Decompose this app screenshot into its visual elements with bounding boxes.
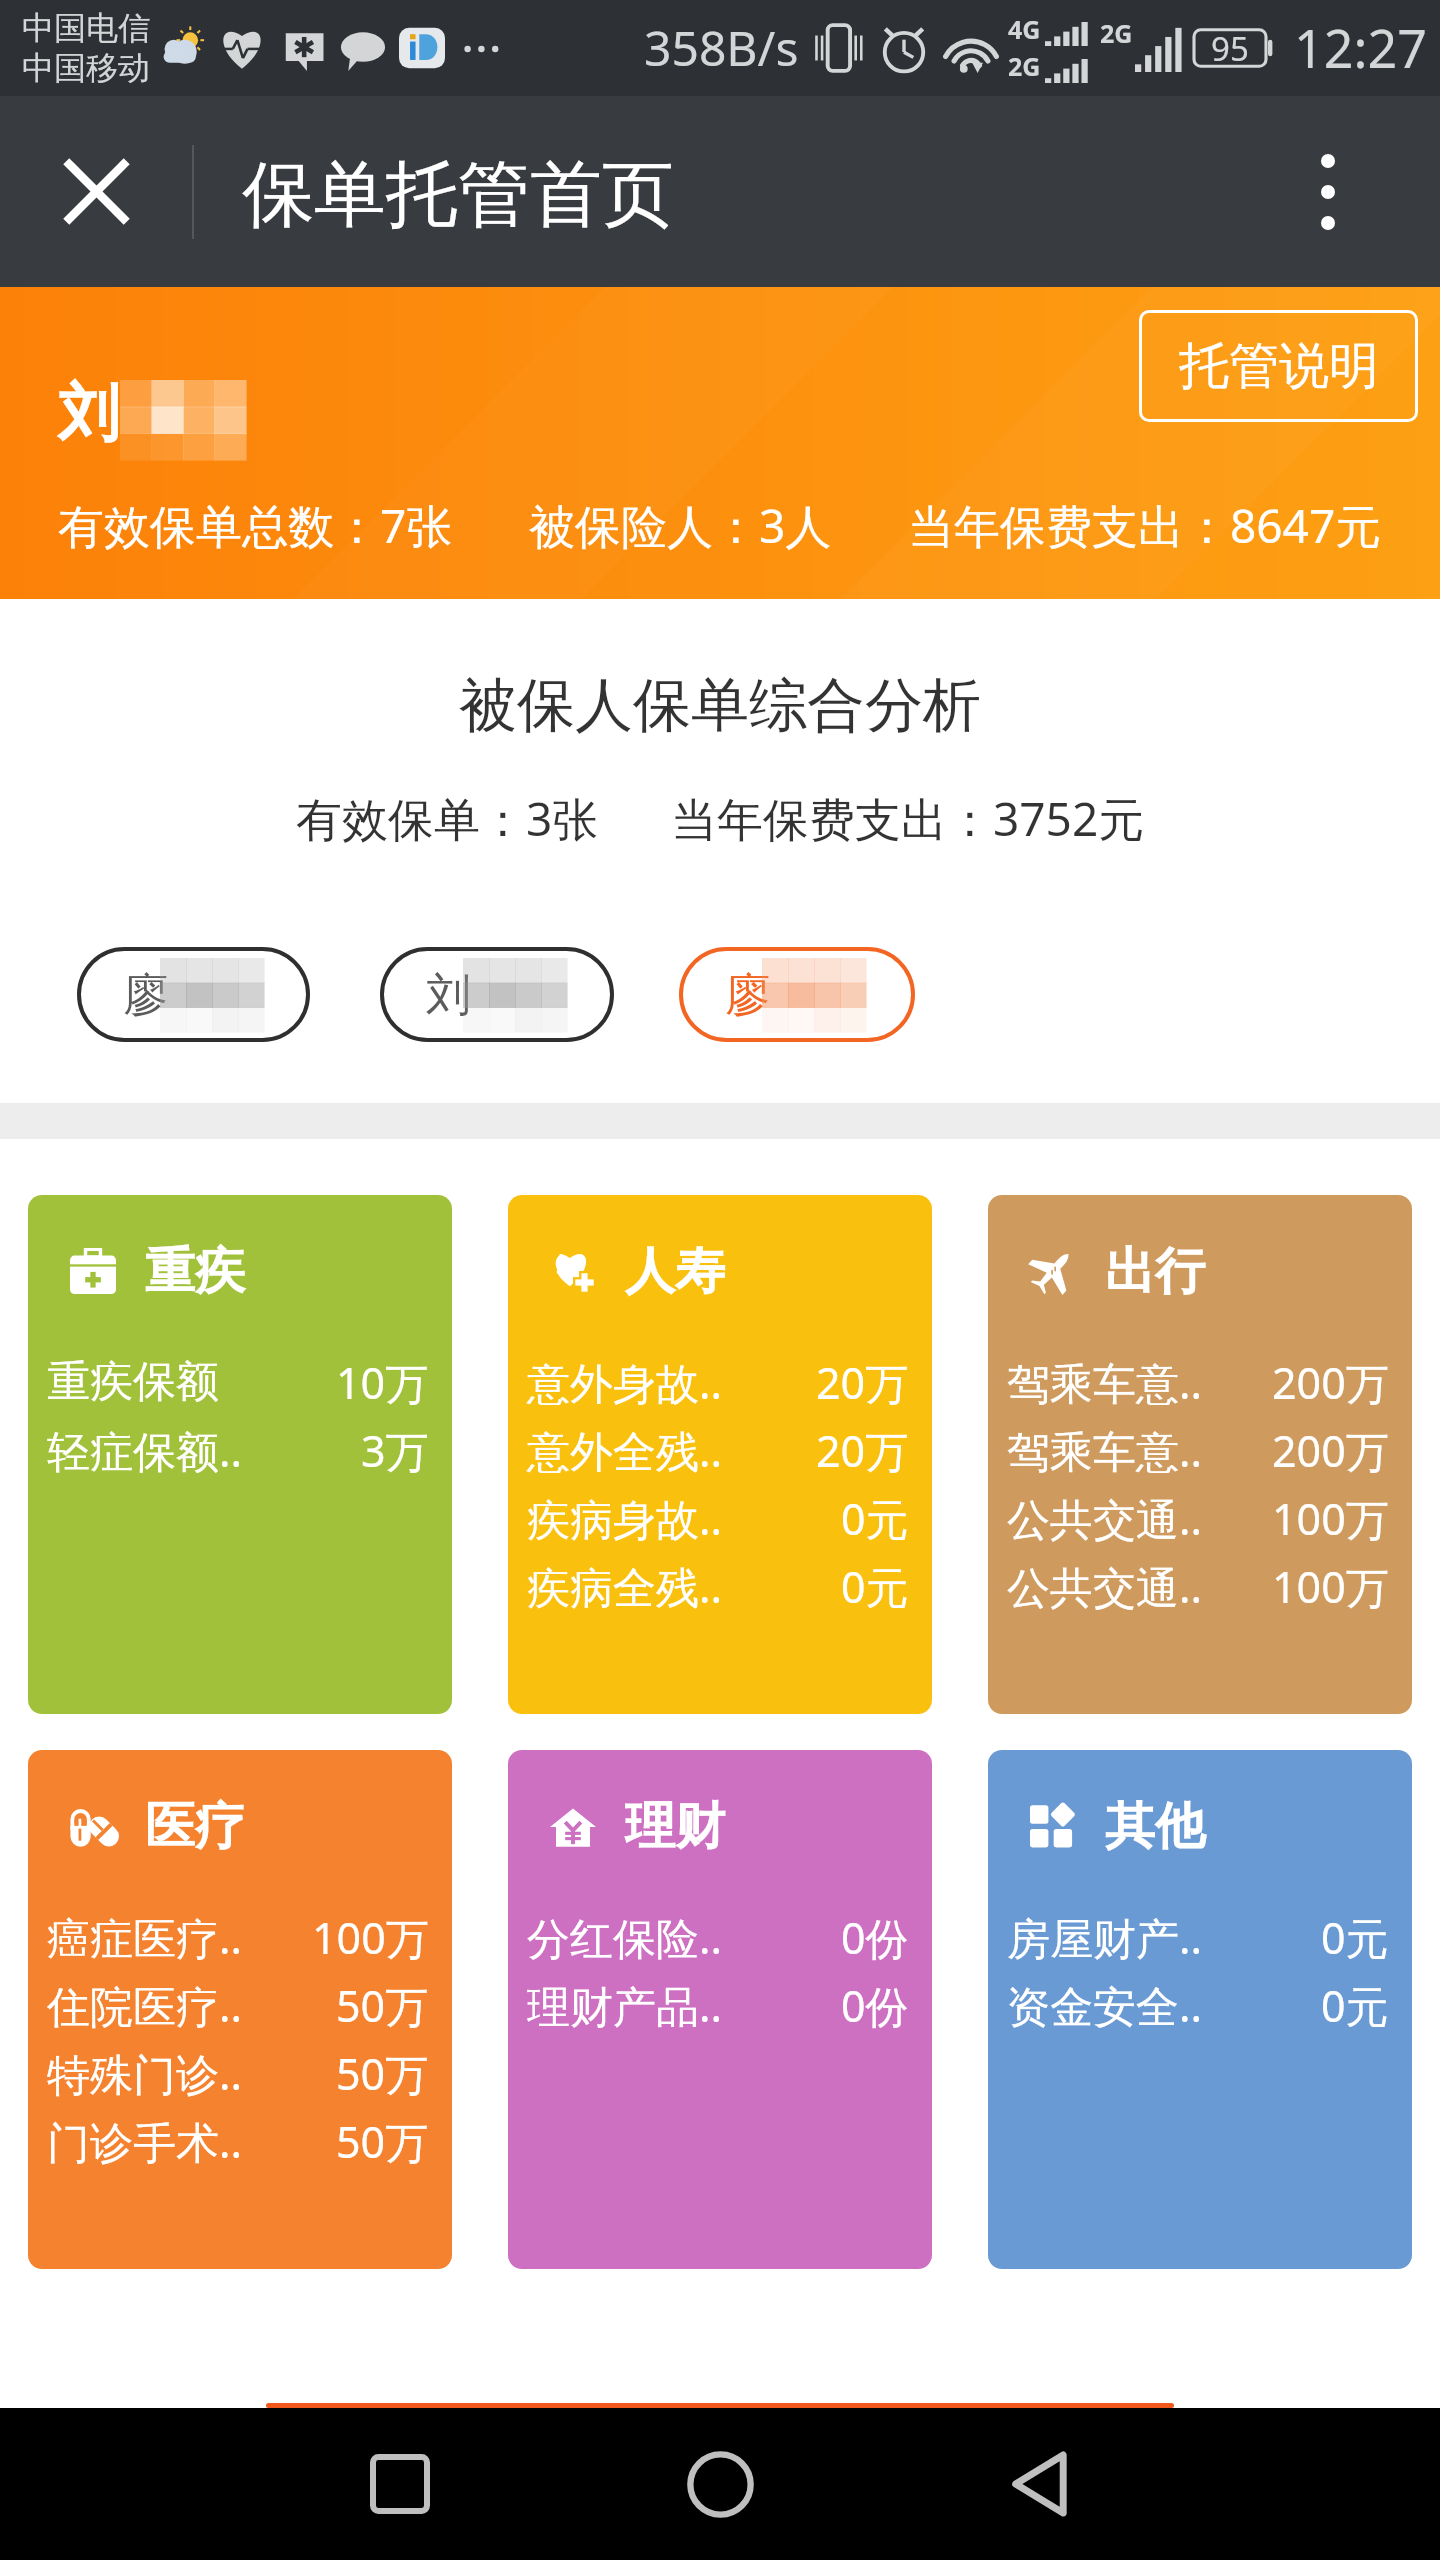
staticText: 廖 — [123, 967, 168, 1024]
button[interactable]: 医疗 — [28, 1750, 452, 2269]
staticText: 驾乘车意.. — [1007, 1421, 1203, 1480]
staticText: 疾病身故.. — [527, 1489, 723, 1548]
staticText: 托管说明 — [1179, 335, 1379, 398]
button[interactable]: 理财 — [508, 1750, 932, 2269]
staticText: 4G — [1008, 12, 1041, 46]
staticText: 被保人保单综合分析 — [0, 669, 1440, 742]
staticText: 出行 — [1105, 1240, 1205, 1303]
staticText: 廖 — [725, 967, 770, 1024]
staticText: 刘 — [58, 374, 120, 452]
staticText: 门诊手术.. — [47, 2112, 243, 2171]
button[interactable]: 其他 — [988, 1750, 1412, 2269]
button[interactable]: 人寿 — [508, 1195, 932, 1714]
staticText: 50万 — [336, 1976, 429, 2035]
staticText: 理财产品.. — [527, 1976, 723, 2035]
staticText: 意外身故.. — [527, 1353, 723, 1412]
staticText: 20万 — [816, 1421, 909, 1480]
staticText: 12:27 — [1294, 12, 1427, 83]
button[interactable]: 重疾 — [28, 1195, 452, 1714]
button[interactable]: Home — [660, 2424, 780, 2544]
staticText: 医疗 — [145, 1795, 245, 1858]
staticText: 当年保费支出：3752元 — [671, 787, 1145, 850]
staticText: 2G — [1100, 16, 1133, 50]
staticText: 驾乘车意.. — [1007, 1353, 1203, 1412]
staticText: 被保险人：3人 — [529, 494, 832, 557]
staticText: 200万 — [1272, 1421, 1389, 1480]
staticText: 公共交通.. — [1007, 1489, 1203, 1548]
button[interactable]: Close — [36, 131, 157, 252]
staticText: 资金安全.. — [1007, 1976, 1203, 2035]
staticText: 20万 — [816, 1353, 909, 1412]
staticText: 中国移动 — [22, 48, 150, 88]
button[interactable]: Recents — [340, 2424, 460, 2544]
staticText: 0份 — [841, 1908, 909, 1967]
staticText: 2G — [1008, 49, 1041, 83]
button[interactable]: 托管说明 — [1139, 310, 1418, 422]
button[interactable]: 廖 — [77, 947, 310, 1042]
staticText: 意外全残.. — [527, 1421, 723, 1480]
staticText: 0元 — [1321, 1908, 1389, 1967]
staticText: 轻症保额.. — [47, 1421, 243, 1480]
staticText: 0份 — [841, 1976, 909, 2035]
button[interactable]: More options — [1273, 137, 1383, 247]
staticText: 50万 — [336, 2112, 429, 2171]
staticText: 有效保单总数：7张 — [58, 494, 453, 557]
staticText: 特殊门诊.. — [47, 2044, 243, 2103]
staticText: 公共交通.. — [1007, 1557, 1203, 1616]
staticText: 重疾保额 — [47, 1355, 219, 1409]
staticText: 刘 — [426, 967, 471, 1024]
button[interactable]: 刘 — [380, 947, 614, 1042]
staticText: 100万 — [1272, 1557, 1389, 1616]
staticText: 理财 — [625, 1795, 725, 1858]
staticText: 癌症医疗.. — [47, 1908, 243, 1967]
staticText: 10万 — [336, 1353, 429, 1412]
staticText: 0元 — [841, 1557, 909, 1616]
staticText: 50万 — [336, 2044, 429, 2103]
staticText: 0元 — [1321, 1976, 1389, 2035]
staticText: 0元 — [841, 1489, 909, 1548]
staticText: 100万 — [1272, 1489, 1389, 1548]
staticText: 分红保险.. — [527, 1908, 723, 1967]
button[interactable]: Back — [980, 2424, 1100, 2544]
button[interactable]: 添加保单 — [266, 2403, 1174, 2408]
staticText: 当年保费支出：8647元 — [908, 494, 1382, 557]
staticText: 3万 — [361, 1421, 429, 1480]
staticText: 95 — [1211, 26, 1249, 71]
staticText: 房屋财产.. — [1007, 1908, 1203, 1967]
staticText: 人寿 — [625, 1240, 725, 1303]
staticText: 100万 — [312, 1908, 429, 1967]
staticText: 358B/s — [644, 15, 799, 80]
staticText: 200万 — [1272, 1353, 1389, 1412]
staticText: 中国电信 — [22, 8, 150, 48]
staticText: 住院医疗.. — [47, 1976, 243, 2035]
staticText: 有效保单：3张 — [296, 787, 599, 850]
button[interactable]: 出行 — [988, 1195, 1412, 1714]
staticText: 保单托管首页 — [242, 150, 674, 241]
button[interactable]: 廖 — [679, 947, 915, 1042]
staticText: 疾病全残.. — [527, 1557, 723, 1616]
staticText: 重疾 — [145, 1240, 245, 1303]
staticText: 其他 — [1105, 1795, 1205, 1858]
